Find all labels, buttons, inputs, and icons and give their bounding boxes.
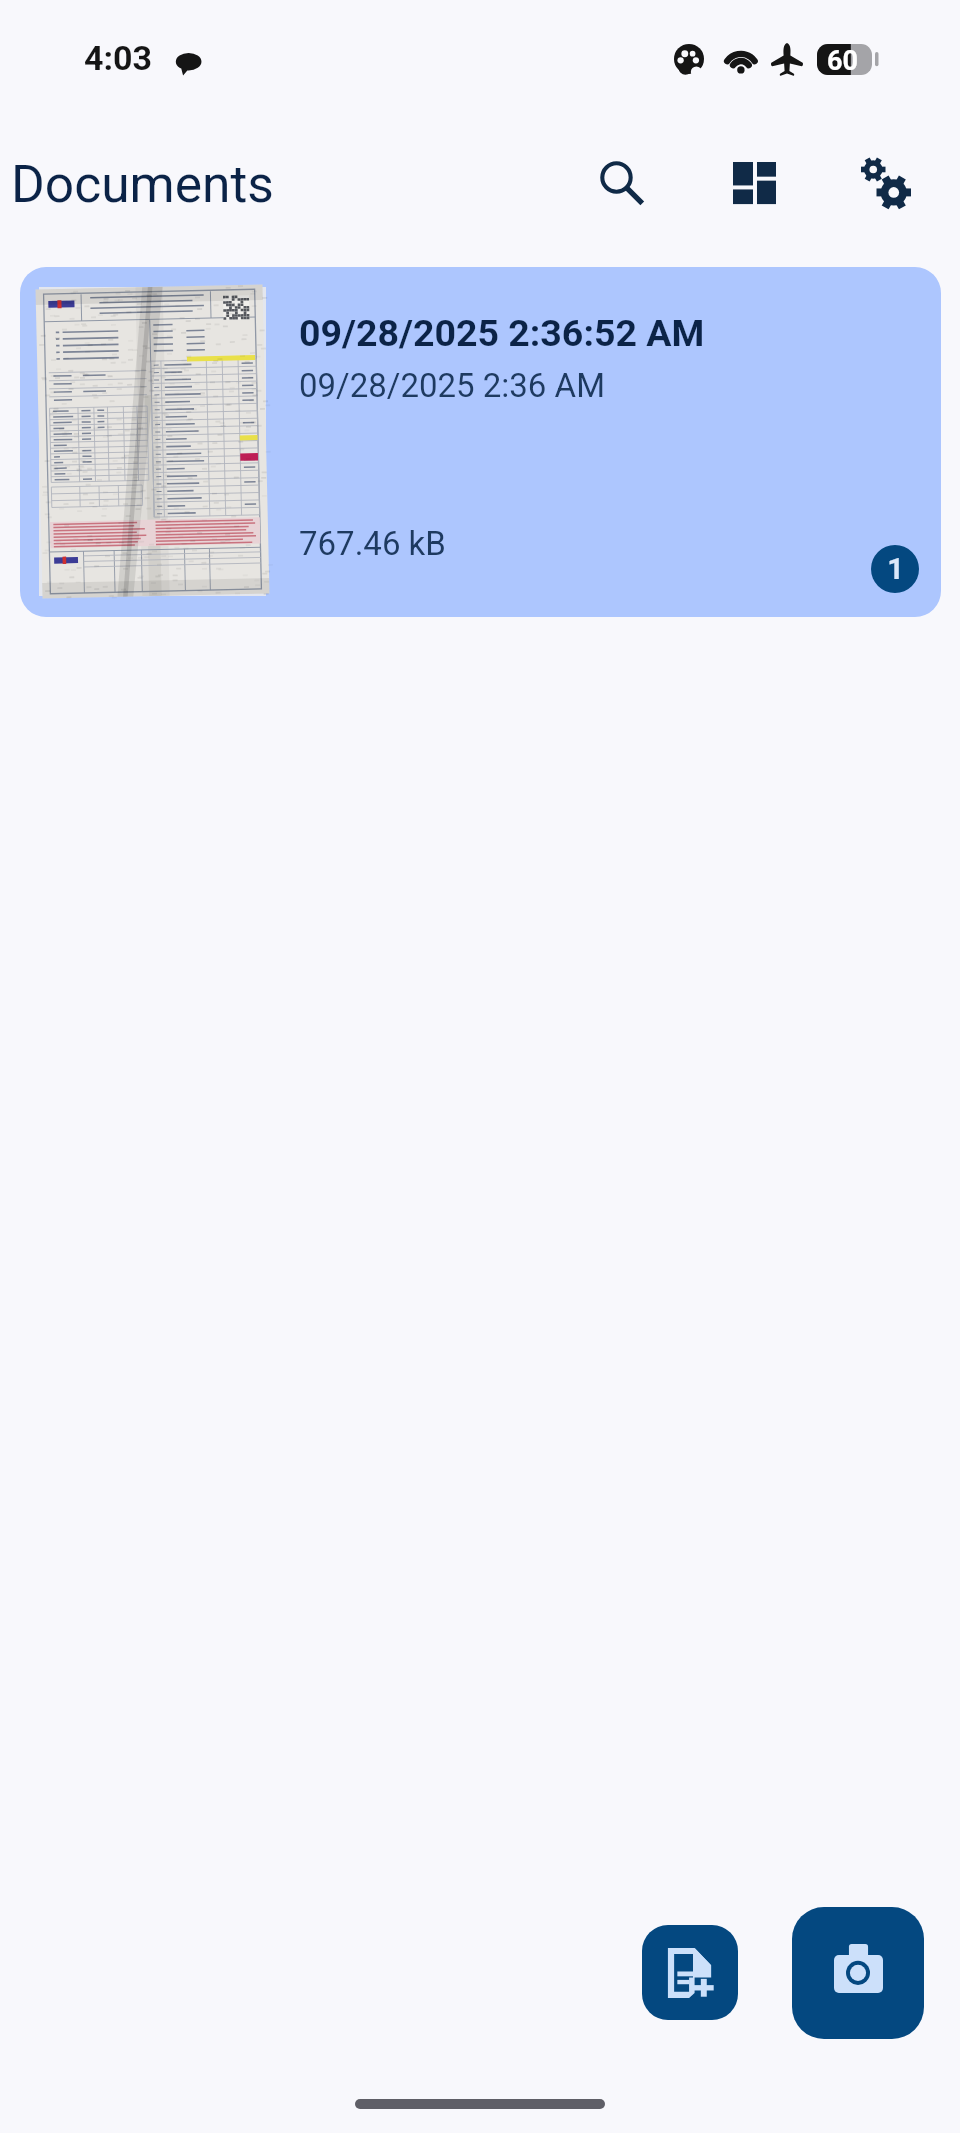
staticText: 4:03: [84, 38, 153, 78]
staticText: 09/28/2025 2:36 AM: [299, 366, 605, 405]
staticText: 1: [887, 552, 904, 586]
button[interactable]: Settings: [820, 117, 952, 249]
button[interactable]: New document: [642, 1925, 738, 2020]
staticText: 09/28/2025 2:36:52 AM: [299, 311, 705, 355]
button[interactable]: Change view: [688, 117, 820, 249]
staticText: 767.46 kB: [299, 524, 446, 563]
staticText: Documents: [11, 154, 274, 214]
button[interactable]: 09/28/2025 2:36:52 AM: [20, 267, 941, 617]
button[interactable]: Scan with camera: [792, 1907, 924, 2039]
button[interactable]: Search: [557, 117, 689, 249]
staticText: 60: [827, 45, 858, 76]
